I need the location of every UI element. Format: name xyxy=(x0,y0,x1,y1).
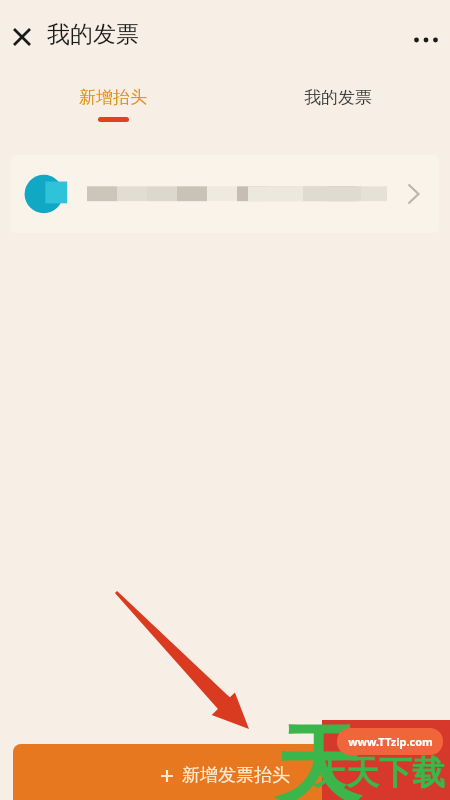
button[interactable]: Close xyxy=(8,23,36,51)
staticText: www.TTzip.com xyxy=(348,734,433,749)
button[interactable]: More options xyxy=(408,22,444,58)
other: Open xyxy=(393,174,433,214)
staticText: 天 xyxy=(275,712,361,800)
staticText: 新增抬头 xyxy=(79,87,147,108)
staticText: 我的发票 xyxy=(47,20,139,49)
button[interactable]: Open xyxy=(11,155,439,233)
staticText: 我的发票 xyxy=(304,87,372,108)
button[interactable]: 我的发票 xyxy=(225,75,450,135)
button[interactable]: 新增抬头 xyxy=(0,75,225,135)
staticText: 天天下载 xyxy=(313,752,445,794)
staticText: 新增发票抬头 xyxy=(182,764,290,787)
button[interactable]: 新增发票抬头 xyxy=(13,744,437,800)
